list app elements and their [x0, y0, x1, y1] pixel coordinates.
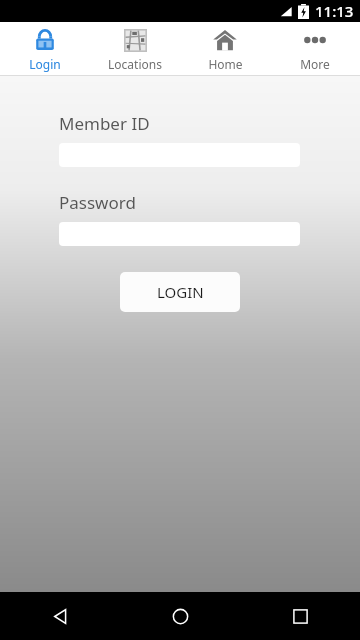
staticText: Home — [208, 56, 243, 72]
button[interactable]: Home — [120, 592, 240, 640]
staticText: LOGIN — [157, 282, 204, 302]
button[interactable]: More — [270, 22, 360, 75]
button[interactable]: LOGIN — [120, 272, 240, 312]
button[interactable]: Locations — [90, 22, 180, 75]
button[interactable]: Login — [0, 22, 90, 75]
staticText: Login — [29, 56, 61, 72]
button[interactable]: Home — [180, 22, 270, 75]
button[interactable]: Back — [0, 592, 120, 640]
button[interactable]: Recent apps — [240, 592, 360, 640]
staticText: 11:13 — [315, 1, 354, 21]
staticText: Member ID — [59, 112, 150, 135]
staticText: More — [300, 56, 330, 72]
staticText: Locations — [108, 56, 162, 72]
staticText: Password — [59, 191, 136, 214]
